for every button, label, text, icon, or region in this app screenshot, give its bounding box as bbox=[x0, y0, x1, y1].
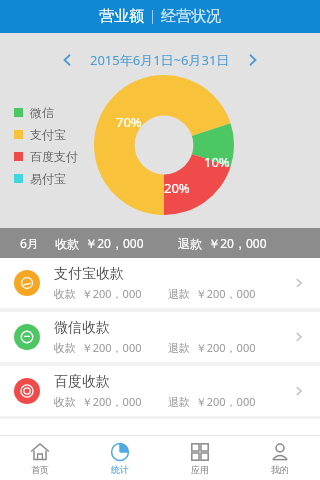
staticText: 收款 ￥20，000 bbox=[55, 235, 144, 251]
staticText: 20% bbox=[164, 179, 190, 197]
staticText: 我的 bbox=[271, 464, 289, 475]
staticText: 微信 bbox=[30, 105, 54, 120]
button[interactable]: 首页 bbox=[0, 436, 80, 480]
staticText: 退款 ￥20，000 bbox=[178, 235, 267, 251]
staticText: 收款 ￥200，000 bbox=[54, 286, 142, 301]
staticText: 退款 ￥200，000 bbox=[168, 394, 256, 409]
button[interactable]: 统计 bbox=[80, 436, 160, 480]
staticText: 6月 bbox=[20, 235, 39, 251]
staticText: 退款 ￥200，000 bbox=[168, 286, 256, 301]
staticText: 2015年6月1日~6月31日 bbox=[90, 51, 230, 69]
staticText: 支付宝 bbox=[30, 127, 66, 142]
staticText: 退款 ￥200，000 bbox=[168, 340, 256, 355]
staticText: 10% bbox=[204, 153, 230, 171]
staticText: 营业额 bbox=[99, 7, 144, 26]
staticText: 首页 bbox=[31, 464, 49, 475]
button[interactable]: 微信收款 bbox=[0, 312, 320, 362]
staticText: 应用 bbox=[191, 464, 209, 475]
button[interactable]: 营业额 bbox=[91, 3, 152, 30]
button[interactable]: 经营状况 bbox=[153, 3, 229, 30]
staticText: 百度收款 bbox=[54, 373, 110, 391]
staticText: 百度支付 bbox=[30, 149, 78, 164]
staticText: 经营状况 bbox=[161, 7, 221, 26]
button[interactable]: Next period bbox=[240, 47, 266, 73]
button[interactable]: 我的 bbox=[240, 436, 320, 480]
staticText: 统计 bbox=[111, 464, 129, 475]
button[interactable]: 应用 bbox=[160, 436, 240, 480]
staticText: 70% bbox=[116, 113, 142, 131]
button[interactable]: 支付宝收款 bbox=[0, 258, 320, 308]
staticText: 微信收款 bbox=[54, 319, 110, 337]
button[interactable]: 百度收款 bbox=[0, 366, 320, 416]
staticText: 易付宝 bbox=[30, 171, 66, 186]
staticText: 收款 ￥200，000 bbox=[54, 340, 142, 355]
staticText: 收款 ￥200，000 bbox=[54, 394, 142, 409]
button[interactable]: Previous period bbox=[54, 47, 80, 73]
staticText: 支付宝收款 bbox=[54, 265, 124, 283]
